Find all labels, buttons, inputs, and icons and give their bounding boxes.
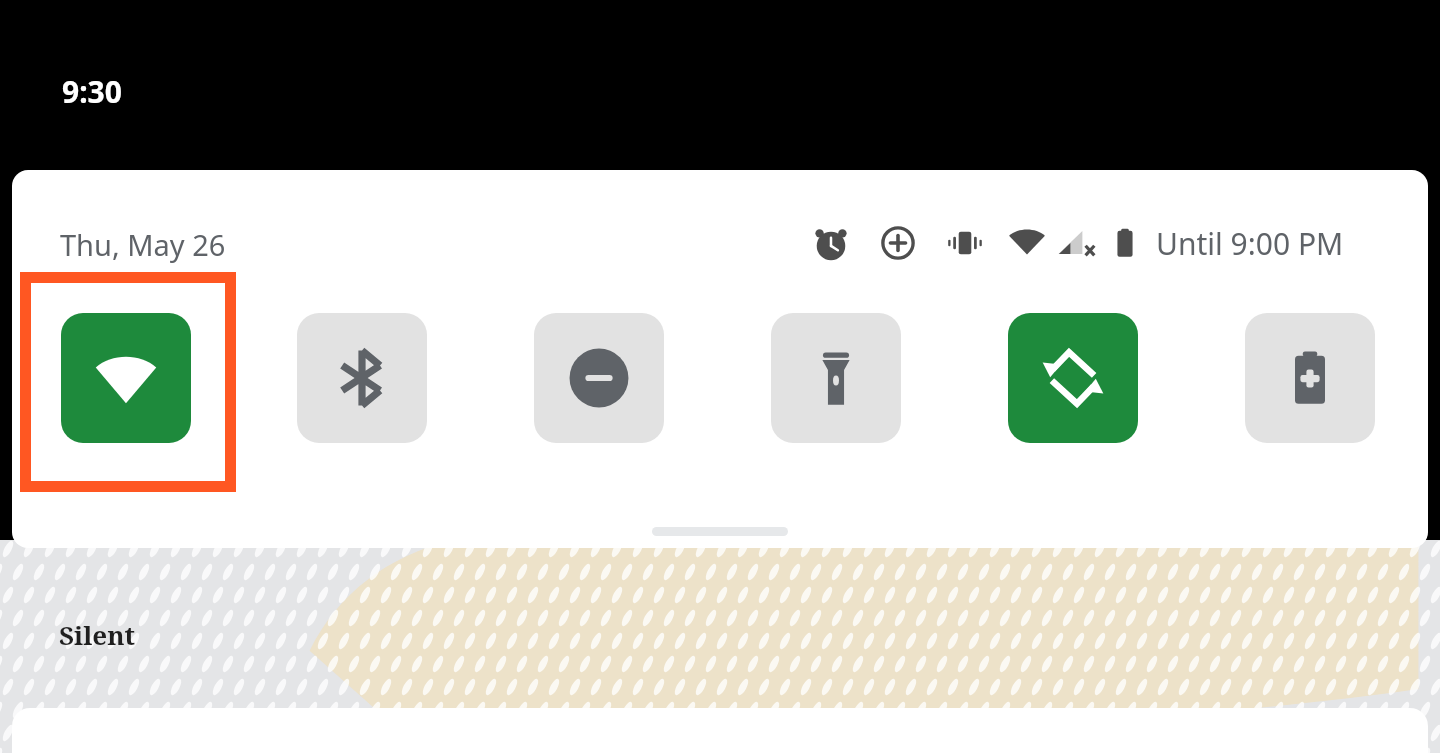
button[interactable]: Battery Saver: [1245, 313, 1375, 443]
button[interactable]: Do Not Disturb: [534, 313, 664, 443]
button[interactable]: Flashlight: [771, 313, 901, 443]
button[interactable]: Auto-rotate: [1008, 313, 1138, 443]
staticText: Until 9:00 PM: [1156, 223, 1344, 264]
staticText: Silent: [59, 617, 136, 652]
staticText: 9:30: [62, 71, 122, 112]
staticText: Thu, May 26: [60, 225, 226, 264]
button[interactable]: Wi-Fi: [61, 313, 191, 443]
button[interactable]: Bluetooth: [297, 313, 427, 443]
